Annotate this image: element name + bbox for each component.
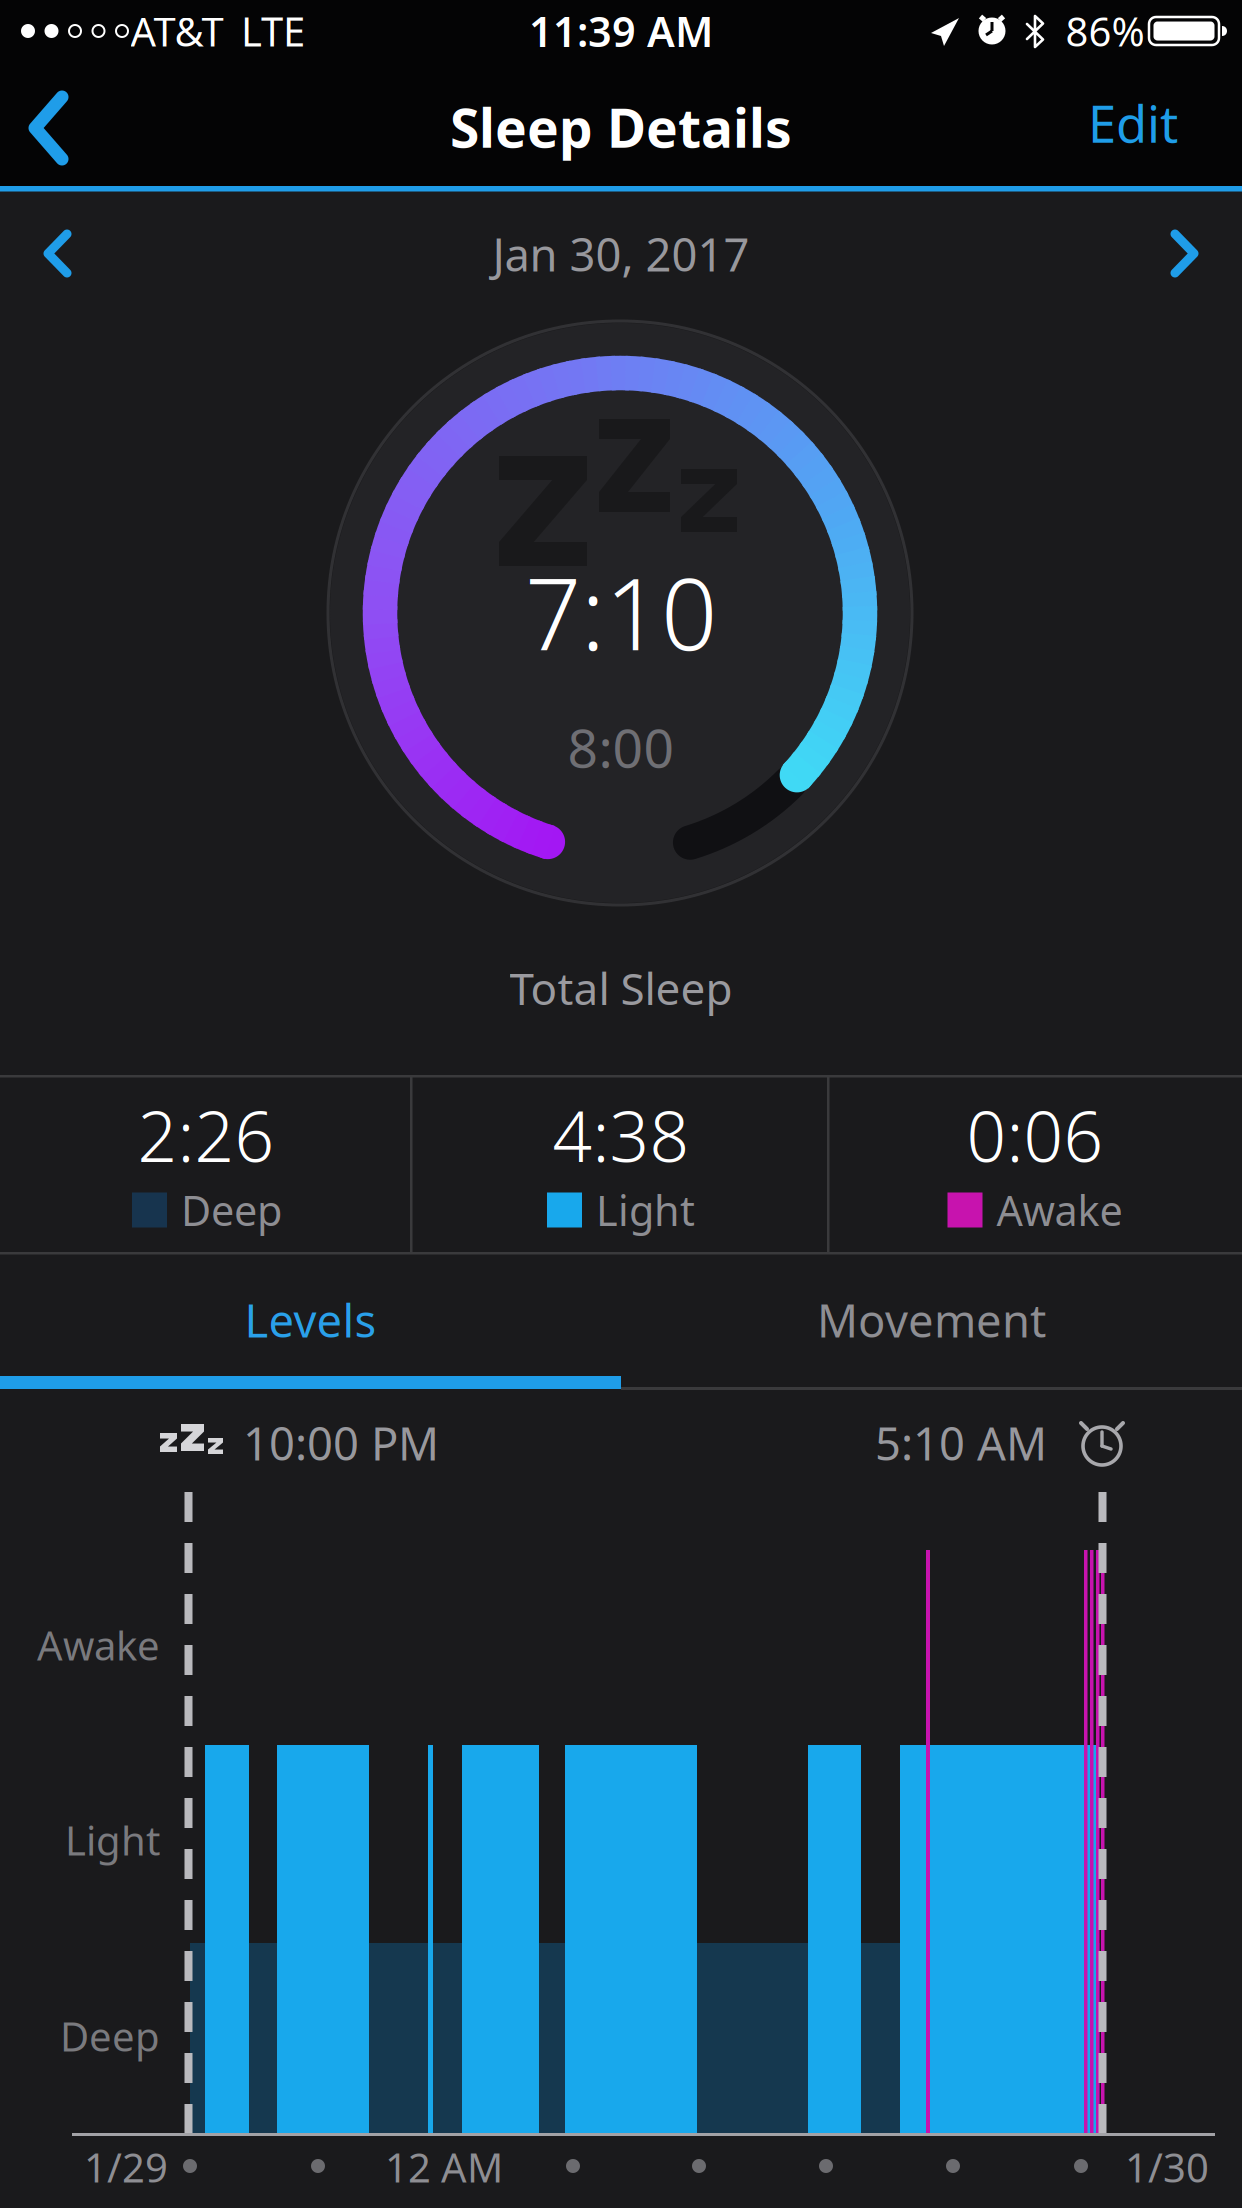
button[interactable]: Edit — [998, 60, 1178, 186]
button[interactable]: Back — [0, 60, 110, 186]
button[interactable]: Levels — [0, 1260, 621, 1380]
staticText: Light — [596, 1183, 695, 1237]
staticText: 1/30 — [1125, 2140, 1209, 2193]
staticText: Light — [65, 1813, 160, 1866]
staticText: Deep — [60, 2009, 160, 2062]
staticText: 12 AM — [385, 2140, 503, 2193]
staticText: Awake — [37, 1618, 160, 1671]
staticText: LTE — [241, 4, 305, 57]
staticText: AT&T — [130, 4, 223, 57]
staticText: Levels — [244, 1290, 376, 1350]
staticText: 1/29 — [84, 2140, 168, 2193]
staticText: 4:38 — [552, 1089, 689, 1181]
staticText: Awake — [996, 1183, 1122, 1237]
staticText: 0:06 — [966, 1089, 1103, 1181]
staticText: 2:26 — [137, 1089, 274, 1181]
staticText: Total Sleep — [509, 959, 732, 1017]
staticText: 10:00 PM — [243, 1413, 439, 1473]
staticText: Deep — [181, 1183, 282, 1237]
staticText: 8:00 — [567, 712, 674, 782]
button[interactable]: Previous day — [8, 203, 108, 303]
staticText: Movement — [817, 1290, 1046, 1350]
staticText: 5:10 AM — [875, 1413, 1047, 1473]
staticText: Jan 30, 2017 — [492, 224, 749, 284]
staticText: Edit — [1088, 89, 1178, 157]
staticText: Sleep Details — [450, 92, 792, 162]
button[interactable]: Movement — [621, 1260, 1242, 1380]
staticText: 11:39 AM — [529, 4, 713, 58]
button[interactable]: Next day — [1134, 203, 1234, 303]
staticText: 86% — [1065, 4, 1144, 57]
staticText: 7:10 — [525, 546, 717, 677]
